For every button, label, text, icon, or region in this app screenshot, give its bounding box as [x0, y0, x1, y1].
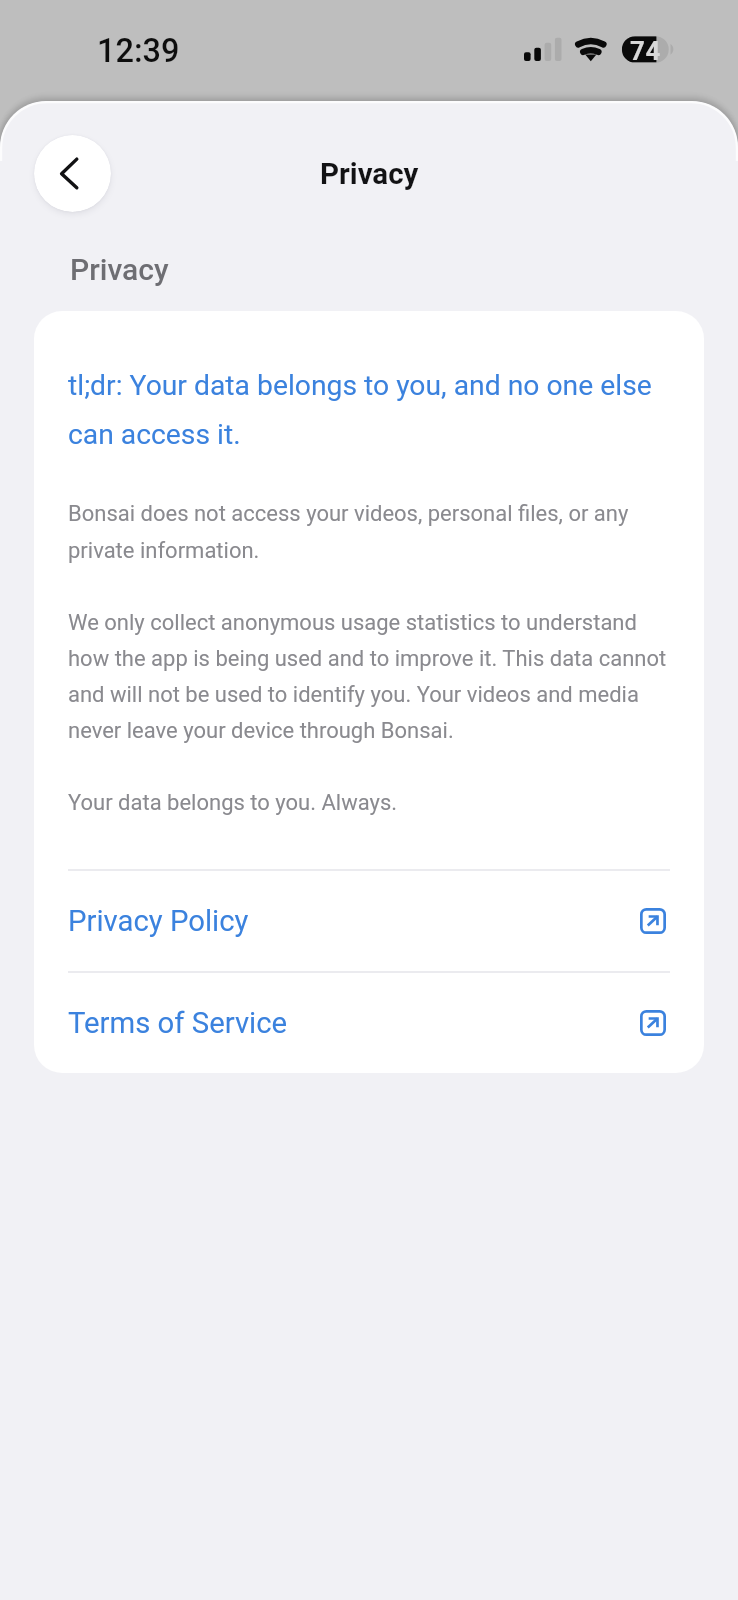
staticText: Bonsai does not access your videos, pers…: [68, 501, 670, 815]
staticText: tl;dr: Your data belongs to you, and no …: [68, 369, 670, 450]
staticText: 12:39: [97, 32, 180, 70]
other: Open Terms of Service: [640, 1010, 666, 1036]
staticText: Privacy Policy: [68, 904, 249, 938]
button[interactable]: Privacy Policy: [68, 871, 670, 971]
button[interactable]: Back: [34, 135, 111, 212]
button[interactable]: Terms of Service: [68, 973, 670, 1073]
other: Open Privacy Policy: [640, 908, 666, 934]
staticText: 74: [630, 36, 661, 66]
staticText: Privacy: [320, 157, 419, 192]
staticText: Terms of Service: [68, 1006, 288, 1040]
staticText: Privacy: [70, 252, 169, 287]
